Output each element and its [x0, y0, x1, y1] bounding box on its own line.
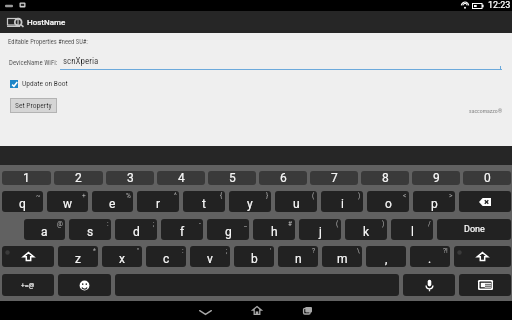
button[interactable]: s [69, 219, 111, 240]
staticText: ?! [443, 247, 448, 255]
button[interactable]: 6 [259, 171, 307, 185]
button[interactable]: 9 [412, 171, 460, 185]
staticText: ? [312, 247, 316, 255]
staticText: q [19, 197, 26, 211]
staticText: . [428, 252, 432, 266]
button[interactable]: . [410, 246, 450, 267]
button[interactable]: 2 [54, 171, 103, 185]
staticText: > [449, 192, 453, 200]
staticText: z [75, 252, 81, 266]
staticText: + [82, 192, 86, 200]
button[interactable]: u [275, 191, 317, 212]
button[interactable]: v [190, 246, 230, 267]
staticText: 7 [331, 171, 338, 185]
button[interactable]: z [58, 246, 98, 267]
button[interactable]: w [47, 191, 88, 212]
staticText: v [207, 252, 213, 266]
button[interactable]: b [234, 246, 274, 267]
staticText: f [180, 225, 185, 239]
button[interactable]: Voice input [403, 274, 455, 296]
button[interactable]: j [299, 219, 341, 240]
staticText: +=@ [21, 281, 35, 290]
button[interactable]: Done [437, 219, 511, 240]
staticText: g [225, 225, 232, 239]
button[interactable]: Shift [454, 246, 511, 267]
button[interactable]: y [229, 191, 271, 212]
staticText: c [163, 252, 170, 266]
staticText: ( [312, 192, 315, 200]
button[interactable]: d [115, 219, 157, 240]
button[interactable]: a [24, 219, 65, 240]
staticText: y [247, 197, 253, 211]
button[interactable]: Recents [282, 301, 333, 320]
button[interactable]: i [321, 191, 363, 212]
button[interactable]: 1 [2, 171, 51, 185]
staticText: 12:23 [488, 0, 511, 11]
button[interactable]: Shift [2, 246, 54, 267]
button[interactable]: 7 [310, 171, 358, 185]
button[interactable]: 8 [361, 171, 409, 185]
staticText: < [403, 192, 407, 200]
button[interactable]: Switch keyboard [459, 274, 511, 296]
button[interactable]: k [345, 219, 387, 240]
button[interactable]: Update on Boot [10, 79, 68, 88]
staticText: ) [358, 192, 361, 200]
button[interactable]: f [161, 219, 203, 240]
button[interactable]: o [367, 191, 409, 212]
button[interactable]: Emoji [58, 274, 111, 296]
staticText: a [41, 225, 48, 239]
staticText: , [385, 252, 388, 266]
staticText: * [93, 247, 96, 255]
staticText: u [293, 197, 300, 211]
button[interactable]: p [413, 191, 455, 212]
button[interactable]: Hide keyboard [180, 301, 231, 320]
staticText: i [341, 197, 344, 211]
button[interactable]: n [278, 246, 318, 267]
button[interactable]: 4 [157, 171, 205, 185]
button[interactable]: Home [231, 301, 282, 320]
staticText: d [133, 225, 140, 239]
staticText: Set Property [15, 101, 52, 110]
button[interactable]: , [366, 246, 406, 267]
staticText: o [385, 197, 392, 211]
staticText: saccomazzo® [469, 108, 503, 115]
staticText: m [337, 252, 348, 266]
staticText: scnXperia [63, 56, 99, 67]
button[interactable]: Set Property [10, 98, 57, 113]
button[interactable]: 5 [208, 171, 256, 185]
button[interactable]: c [146, 246, 186, 267]
staticText: { [220, 192, 223, 200]
staticText: HostName [27, 18, 66, 27]
button[interactable]: g [207, 219, 249, 240]
staticText: ~ [36, 192, 41, 200]
staticText: : [182, 247, 184, 255]
staticText: \ [357, 247, 360, 255]
button[interactable]: q [2, 191, 43, 212]
staticText: s [87, 225, 94, 239]
staticText: 2 [75, 171, 82, 185]
staticText: w [63, 197, 73, 211]
button[interactable]: 0 [463, 171, 511, 185]
staticText: p [431, 197, 438, 211]
button[interactable]: h [253, 219, 295, 240]
button[interactable]: Symbols [2, 274, 54, 296]
staticText: ' [270, 247, 272, 255]
staticText: ^ [174, 192, 177, 200]
staticText: " [137, 247, 140, 255]
button[interactable]: 3 [106, 171, 154, 185]
button[interactable]: Backspace [459, 191, 511, 212]
staticText: Editable Properties #need SU#: [8, 38, 88, 46]
staticText: _ [244, 220, 247, 228]
staticText: @ [57, 220, 63, 228]
button[interactable]: m [322, 246, 362, 267]
button[interactable]: e [92, 191, 133, 212]
staticText: h [271, 225, 278, 239]
staticText: e [109, 197, 116, 211]
button[interactable]: t [183, 191, 225, 212]
button[interactable]: l [391, 219, 433, 240]
staticText: % [126, 192, 131, 200]
staticText: Done [464, 224, 485, 235]
button[interactable]: x [102, 246, 142, 267]
button[interactable]: r [137, 191, 179, 212]
